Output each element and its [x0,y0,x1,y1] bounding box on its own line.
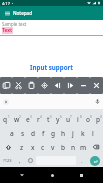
button[interactable]: Shift [0,140,16,154]
staticText: 6 [60,115,62,119]
staticText: q [3,115,8,124]
button[interactable]: Copy [0,77,12,94]
staticText: 2 [19,115,21,119]
staticText: v [51,143,55,152]
staticText: Input support [30,63,73,71]
button[interactable]: e [22,112,33,126]
staticText: t [47,115,50,124]
button[interactable]: Close [90,77,103,94]
button[interactable]: Cut [12,77,25,94]
staticText: 4:17 [2,1,10,6]
button[interactable]: z [16,140,27,154]
staticText: 8 [80,115,82,119]
button[interactable]: g [48,126,58,140]
button[interactable]: Backspace [88,140,103,154]
staticText: j [72,129,74,138]
staticText: , [19,157,21,165]
staticText: w [14,115,20,124]
staticText: Text [2,27,13,34]
staticText: u [66,115,71,124]
button[interactable]: Back [15,168,29,182]
staticText: m [80,143,87,152]
button[interactable]: s [17,126,28,140]
button[interactable]: c [38,140,48,154]
button[interactable]: Home [45,168,59,182]
button[interactable]: Open navigation drawer [2,8,12,18]
staticText: a [10,129,14,138]
staticText: 0 [100,115,102,119]
staticText: h [61,129,66,138]
button[interactable]: m [78,140,88,154]
button[interactable]: x [27,140,38,154]
button[interactable]: y [53,112,63,126]
button[interactable]: Voice input [93,97,102,106]
staticText: Notepad [13,10,33,16]
staticText: s [21,129,25,138]
button[interactable]: n [68,140,78,154]
staticText: r [37,115,40,124]
staticText: 3 [30,115,32,119]
button[interactable]: p [93,112,103,126]
staticText: g [51,129,56,138]
button[interactable]: Settings [38,77,51,94]
staticText: y [56,115,60,124]
staticText: l [92,129,94,138]
staticText: d [31,129,36,138]
staticText: e [26,115,30,124]
staticText: c [41,143,45,152]
staticText: p [96,115,101,124]
button[interactable]: Move cursor right [64,77,77,94]
button[interactable]: . [77,154,87,167]
staticText: z [20,143,24,152]
staticText: f [42,129,45,138]
button[interactable]: b [58,140,68,154]
button[interactable]: , [15,154,25,167]
button[interactable]: o [83,112,93,126]
staticText: n [71,143,76,152]
staticText: ?123 [3,158,12,163]
button[interactable]: f [38,126,48,140]
button[interactable]: u [63,112,73,126]
staticText: b [61,143,66,152]
staticText: 4 [40,115,42,119]
staticText: o [86,115,90,124]
staticText: 5 [50,115,52,119]
button[interactable]: v [48,140,58,154]
button[interactable]: Minimize [77,77,90,94]
button[interactable]: a [6,126,17,140]
button[interactable]: Paste [25,77,38,94]
button[interactable]: d [28,126,38,140]
staticText: 9 [90,115,92,119]
button[interactable]: r [33,112,43,126]
button[interactable]: Move cursor left [51,77,64,94]
button[interactable]: Recent apps [74,168,88,182]
button[interactable]: h [58,126,68,140]
staticText: 1 [8,115,10,119]
staticText: 7 [70,115,72,119]
staticText: x [31,143,35,152]
button[interactable]: w [11,112,22,126]
button[interactable]: Enter [87,154,103,167]
staticText: i [77,115,79,124]
button[interactable]: t [43,112,53,126]
button[interactable]: ?123 [0,154,15,167]
button[interactable]: Expand toolbar [1,97,10,106]
button[interactable]: k [78,126,88,140]
button[interactable]: i [73,112,83,126]
button[interactable]: j [68,126,78,140]
button[interactable]: Emoji [25,154,35,167]
button[interactable]: q [0,112,11,126]
button[interactable]: l [88,126,98,140]
staticText: k [81,129,85,138]
staticText: Sample text [2,21,27,27]
staticText: . [81,157,83,165]
